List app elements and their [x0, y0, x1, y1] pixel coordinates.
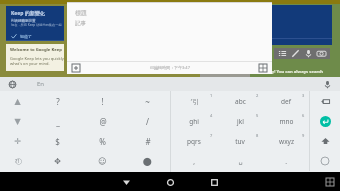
- button[interactable]: Shift: [310, 131, 340, 151]
- other: Backspace: [321, 97, 330, 106]
- button[interactable]: [270, 5, 332, 45]
- staticText: tuv: [235, 137, 245, 146]
- button[interactable]: Enter: [310, 111, 340, 131]
- button[interactable]: Draw: [291, 49, 300, 58]
- button[interactable]: ▼: [0, 111, 35, 131]
- button[interactable]: jkl: [217, 111, 263, 131]
- staticText: 列表標籤新設置: [11, 19, 36, 23]
- staticText: ✥: [54, 157, 61, 166]
- staticText: 3: [302, 93, 305, 98]
- staticText: ?1⃝: [15, 158, 20, 165]
- staticText: 現在，所有 Keep 功能均已集在一起: [11, 23, 62, 27]
- button[interactable]: Home: [162, 174, 178, 190]
- button[interactable]: ?: [35, 91, 80, 111]
- staticText: 8: [256, 133, 259, 138]
- staticText: En: [37, 80, 45, 88]
- button[interactable]: Photo: [317, 49, 326, 58]
- staticText: 已編輯時間：下午3:47: [150, 65, 190, 70]
- button[interactable]: ~: [125, 91, 170, 111]
- staticText: ry! You can always search: [270, 69, 324, 75]
- staticText: ▼: [14, 117, 21, 126]
- button[interactable]: def: [263, 91, 309, 111]
- button[interactable]: ⬤: [125, 151, 170, 171]
- staticText: 記事: [75, 20, 86, 27]
- staticText: mno: [279, 117, 294, 126]
- staticText: pqrs: [187, 137, 201, 146]
- button[interactable]: @: [80, 111, 125, 131]
- button[interactable]: More options: [259, 64, 267, 72]
- button[interactable]: !: [80, 91, 125, 111]
- staticText: ▲: [14, 97, 21, 106]
- button[interactable]: wxyz: [263, 131, 309, 151]
- button[interactable]: pqrs: [171, 131, 217, 151]
- staticText: 標題: [75, 9, 87, 17]
- staticText: abc: [235, 97, 246, 106]
- staticText: ☺: [98, 157, 107, 166]
- button[interactable]: ␣: [217, 151, 263, 171]
- staticText: 5: [256, 113, 259, 118]
- staticText: ,: [193, 157, 195, 166]
- staticText: 4: [210, 113, 213, 118]
- button[interactable]: Back: [118, 174, 134, 190]
- button[interactable]: Add: [72, 64, 80, 72]
- button[interactable]: Keep 的新變化: [6, 6, 64, 41]
- staticText: 6: [302, 113, 305, 118]
- other: Shift: [321, 137, 330, 146]
- staticText: /: [146, 116, 149, 127]
- staticText: #: [145, 136, 151, 147]
- staticText: def: [281, 97, 291, 106]
- other: Emoji: [321, 157, 329, 165]
- staticText: @: [99, 116, 107, 127]
- staticText: _: [56, 116, 60, 127]
- button[interactable]: ?1⃝: [0, 151, 35, 171]
- staticText: 7: [210, 133, 213, 138]
- button[interactable]: Welcome to Google Keep: [6, 44, 64, 71]
- staticText: 9: [302, 133, 305, 138]
- button[interactable]: mno: [263, 111, 309, 131]
- staticText: Keep 的新變化: [11, 10, 45, 17]
- staticText: ′引: [190, 97, 199, 106]
- staticText: ~: [145, 96, 150, 107]
- button[interactable]: ghi: [171, 111, 217, 131]
- button[interactable]: %: [80, 131, 125, 151]
- button[interactable]: Backspace: [310, 91, 340, 111]
- staticText: what's on your mind.: [10, 61, 50, 66]
- button[interactable]: Recents: [206, 174, 222, 190]
- button[interactable]: ′引: [171, 91, 217, 111]
- button[interactable]: Keyboard: [326, 178, 334, 186]
- staticText: 2: [256, 93, 259, 98]
- staticText: jkl: [237, 117, 244, 126]
- staticText: ?: [56, 96, 60, 107]
- staticText: .: [285, 157, 287, 166]
- button[interactable]: Voice input: [323, 80, 332, 89]
- button[interactable]: /: [125, 111, 170, 131]
- button[interactable]: _: [35, 111, 80, 131]
- staticText: ⬤: [143, 157, 152, 166]
- button[interactable]: Voice: [304, 49, 313, 58]
- other: Enter: [320, 116, 331, 127]
- staticText: $: [55, 136, 60, 147]
- staticText: ✛: [14, 137, 21, 146]
- staticText: Google Keep lets you quickly: [10, 56, 64, 61]
- staticText: !: [101, 96, 104, 107]
- button[interactable]: #: [125, 131, 170, 151]
- button[interactable]: abc: [217, 91, 263, 111]
- staticText: ghi: [189, 117, 199, 126]
- button[interactable]: Language: [8, 80, 17, 89]
- button[interactable]: $: [35, 131, 80, 151]
- button[interactable]: ✥: [35, 151, 80, 171]
- button[interactable]: Emoji: [310, 151, 340, 171]
- button[interactable]: tuv: [217, 131, 263, 151]
- staticText: wxyz: [279, 137, 294, 146]
- staticText: 知道了: [20, 34, 32, 39]
- button[interactable]: ☺: [80, 151, 125, 171]
- staticText: %: [99, 136, 106, 147]
- staticText: 1: [210, 93, 213, 98]
- staticText: ␣: [238, 157, 243, 165]
- button[interactable]: ✛: [0, 131, 35, 151]
- staticText: Welcome to Google Keep: [10, 47, 62, 53]
- button[interactable]: List: [278, 49, 287, 58]
- button[interactable]: ▲: [0, 91, 35, 111]
